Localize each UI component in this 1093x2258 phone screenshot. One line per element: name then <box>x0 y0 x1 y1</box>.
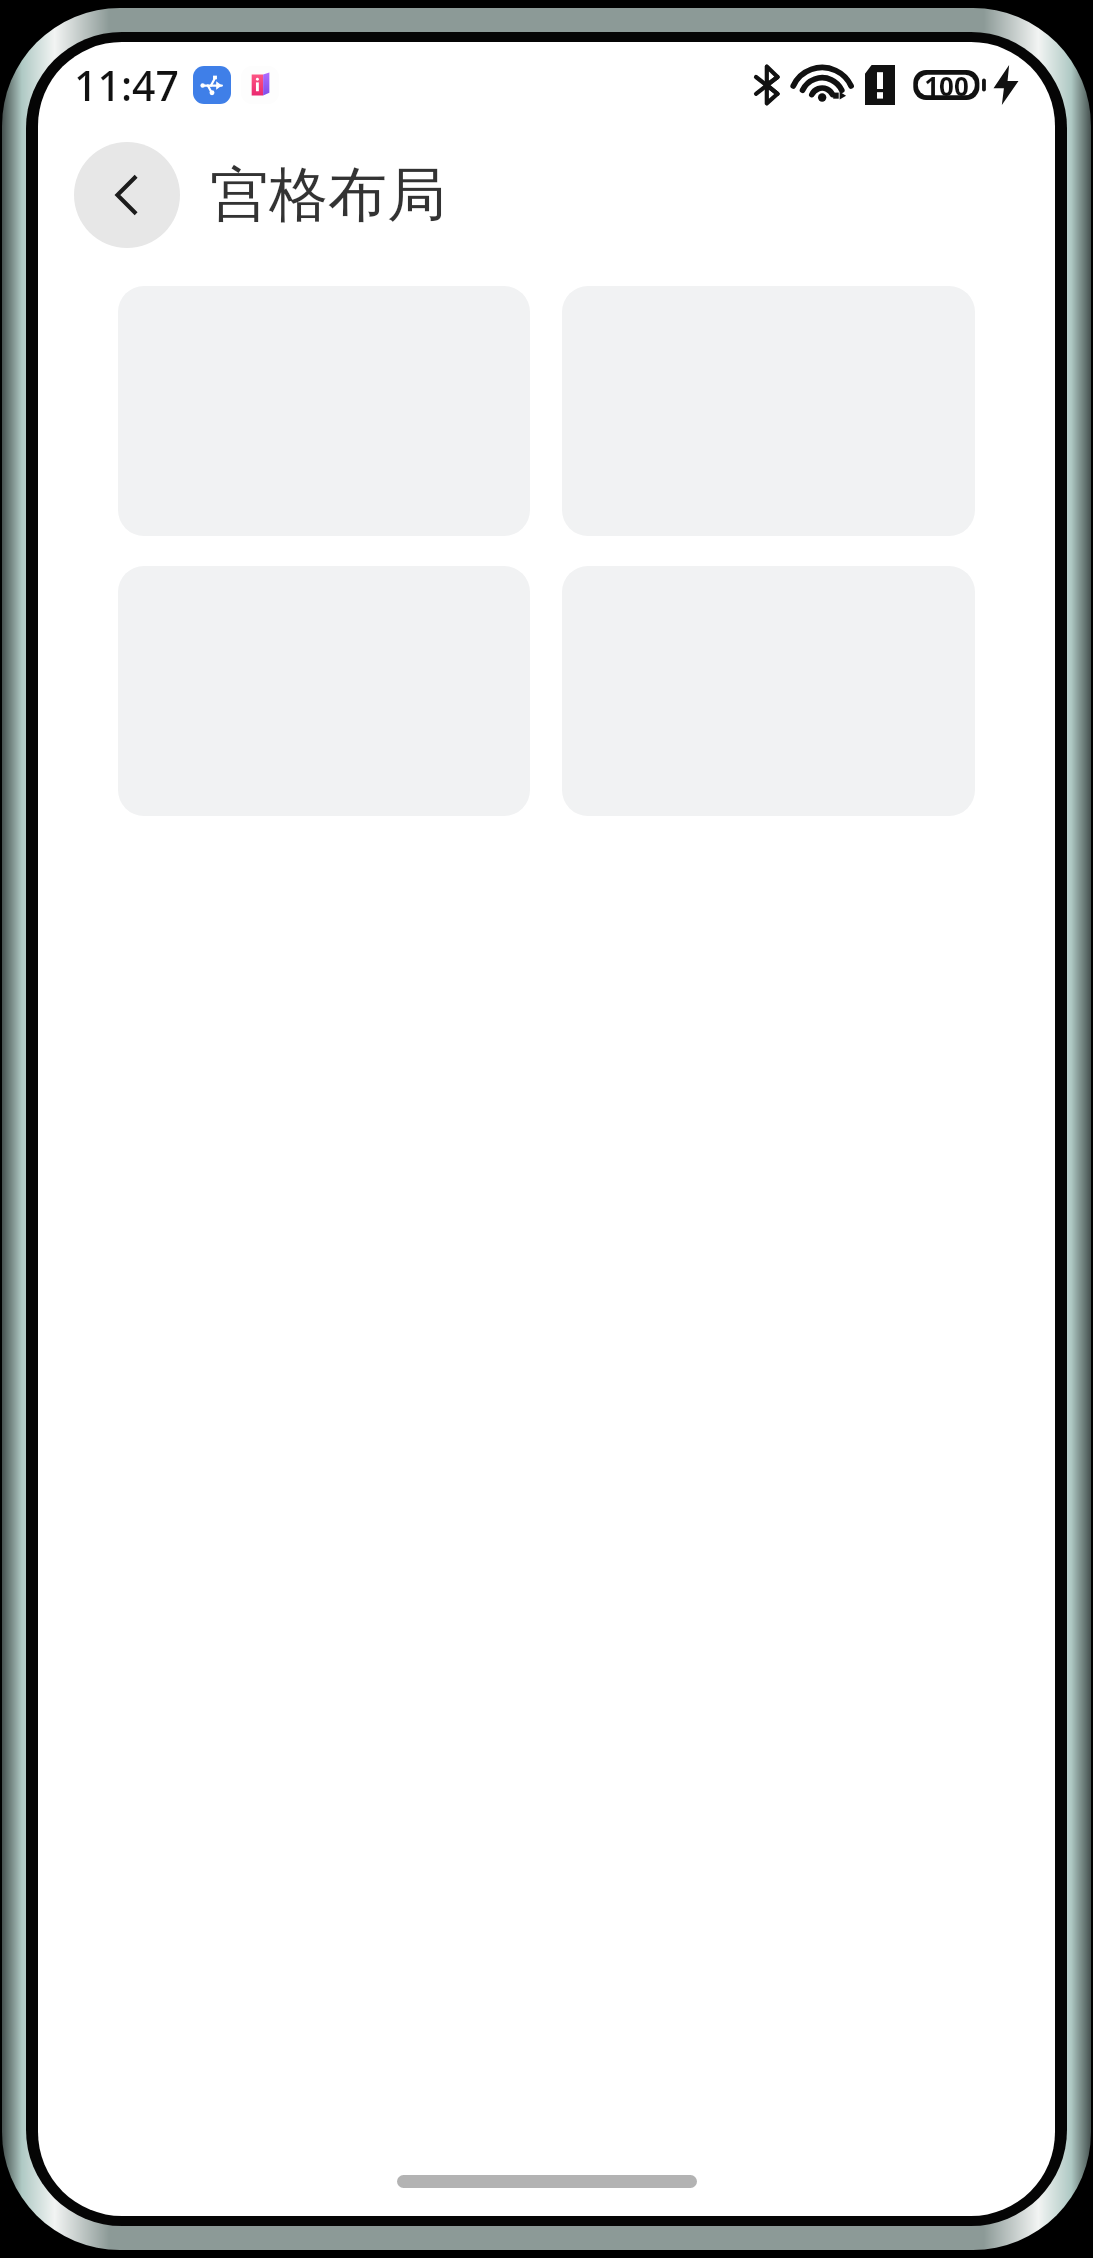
other: Charging <box>993 65 1019 105</box>
other: Wi-Fi <box>801 66 847 104</box>
other: SIM card alert <box>865 65 895 105</box>
button[interactable]: Back <box>74 142 180 248</box>
staticText: 11:47 <box>74 57 179 113</box>
staticText: 宫格布局 <box>210 158 446 232</box>
other: Bluetooth <box>753 65 783 105</box>
staticText: 100 <box>924 68 969 103</box>
